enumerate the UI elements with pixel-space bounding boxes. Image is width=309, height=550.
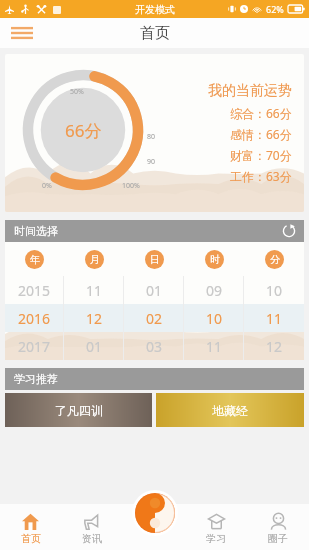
staticText: 地藏经 (212, 403, 248, 418)
staticText: 首页 (140, 24, 170, 43)
staticText: 80 (147, 132, 156, 142)
staticText: 开发模式 (135, 3, 175, 16)
staticText: 01 (146, 281, 163, 300)
staticText: 11 (86, 281, 103, 300)
staticText: 11 (266, 309, 283, 328)
staticText: 学习 (206, 532, 226, 545)
button[interactable]: 时 (205, 250, 224, 269)
button[interactable]: 12 (244, 332, 304, 360)
staticText: 感情：66分 (230, 126, 292, 142)
button[interactable]: 了凡四训 (5, 393, 152, 427)
staticText: 0% (42, 181, 52, 191)
staticText: 学习推荐 (14, 372, 58, 386)
button[interactable]: 02 (124, 304, 184, 332)
staticText: 2015 (18, 281, 51, 300)
button[interactable]: 2017 (5, 332, 64, 360)
staticText: 年 (30, 253, 40, 266)
button[interactable]: 09 (184, 276, 244, 304)
button[interactable]: 学习 (185, 504, 247, 550)
button[interactable]: 12 (64, 304, 124, 332)
button[interactable]: 日 (145, 250, 164, 269)
staticText: 100% (122, 181, 140, 191)
button[interactable]: 分 (265, 250, 284, 269)
staticText: 财富：70分 (230, 147, 292, 163)
button[interactable]: 学习推荐 (5, 368, 304, 390)
staticText: 首页 (21, 532, 41, 545)
staticText: 时间选择 (14, 224, 58, 238)
staticText: 2017 (18, 337, 51, 356)
staticText: 分 (270, 253, 280, 266)
button[interactable]: 圈子 (247, 504, 309, 550)
button[interactable]: Divination (132, 490, 178, 536)
staticText: 日 (150, 253, 160, 266)
staticText: 我的当前运势 (208, 82, 292, 100)
button[interactable]: 10 (184, 304, 244, 332)
staticText: 09 (206, 281, 223, 300)
staticText: 资讯 (82, 532, 102, 545)
staticText: 50% (70, 87, 84, 97)
button[interactable]: 资讯 (61, 504, 123, 550)
staticText: 10 (266, 281, 283, 300)
button[interactable]: 01 (64, 332, 124, 360)
staticText: 12 (266, 337, 283, 356)
staticText: 了凡四训 (55, 403, 103, 418)
staticText: 2016 (18, 309, 51, 328)
button[interactable]: 2015 (5, 276, 64, 304)
button[interactable]: Menu (8, 21, 36, 45)
button[interactable]: 月 (85, 250, 104, 269)
staticText: 圈子 (268, 532, 288, 545)
button[interactable]: 11 (244, 304, 304, 332)
staticText: 02 (146, 309, 163, 328)
button[interactable]: 地藏经 (156, 393, 304, 427)
staticText: 66分 (65, 119, 102, 142)
button[interactable]: 11 (184, 332, 244, 360)
staticText: 11 (206, 337, 223, 356)
staticText: 01 (86, 337, 103, 356)
staticText: 10 (206, 309, 223, 328)
staticText: 综合：66分 (230, 105, 292, 121)
button[interactable]: 01 (124, 276, 184, 304)
staticText: 62% (266, 3, 284, 15)
staticText: 工作：63分 (230, 168, 292, 184)
staticText: 12 (86, 309, 103, 328)
button[interactable]: Refresh (280, 222, 298, 240)
button[interactable]: 10 (244, 276, 304, 304)
button[interactable]: 03 (124, 332, 184, 360)
button[interactable]: 2016 (5, 304, 64, 332)
staticText: 90 (147, 157, 156, 167)
staticText: 月 (90, 253, 100, 266)
button[interactable]: 首页 (0, 504, 61, 550)
button[interactable]: 年 (25, 250, 44, 269)
staticText: 03 (146, 337, 163, 356)
staticText: 时 (210, 253, 220, 266)
button[interactable]: 11 (64, 276, 124, 304)
button[interactable]: 66分 (5, 54, 304, 212)
